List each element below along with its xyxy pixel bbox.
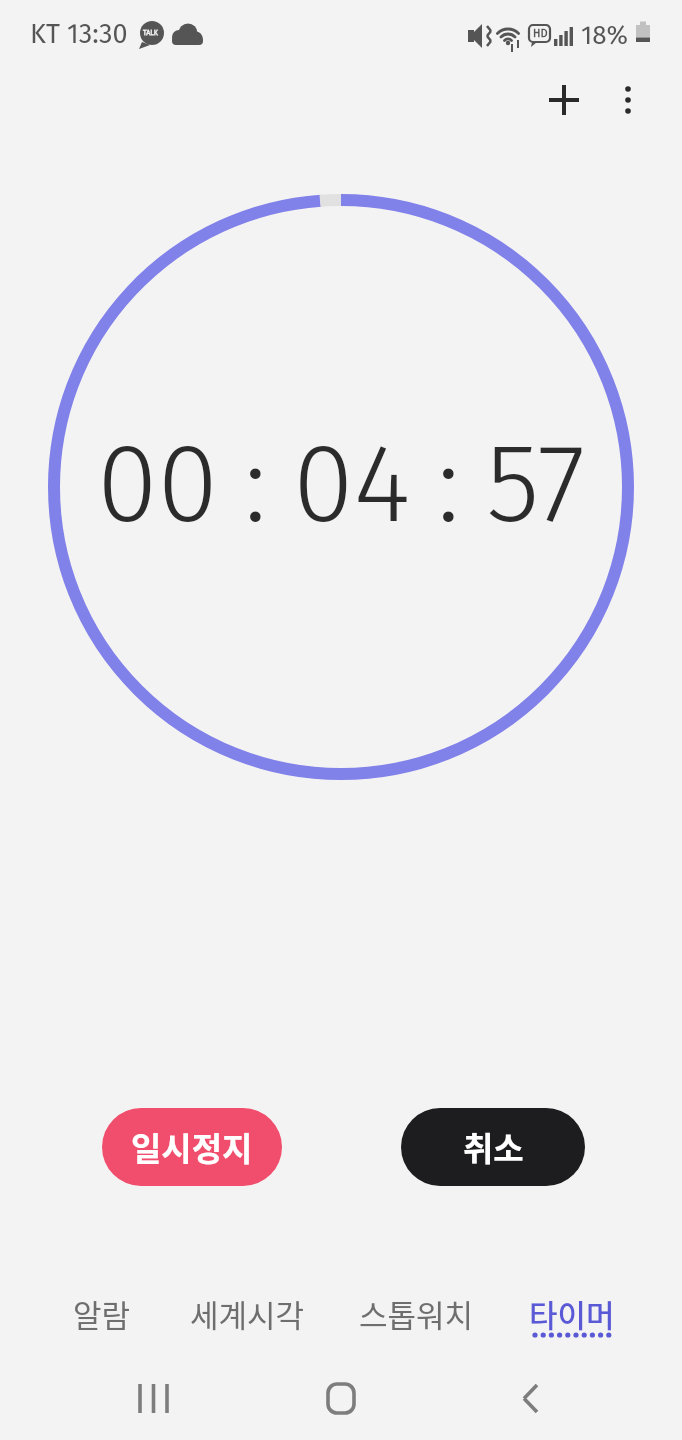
staticText: 타이머 xyxy=(529,1291,615,1336)
button[interactable] xyxy=(491,1360,571,1435)
button[interactable] xyxy=(539,75,589,125)
staticText: 알람 xyxy=(73,1291,131,1336)
button[interactable]: 스톱워치 xyxy=(341,1288,491,1338)
button[interactable]: 타이머 xyxy=(497,1288,647,1338)
staticText: 18% xyxy=(581,20,629,51)
staticText: HD xyxy=(533,27,548,40)
staticText: 00 xyxy=(97,418,218,550)
button[interactable]: 알람 xyxy=(27,1288,177,1338)
button[interactable]: 일시정지 xyxy=(102,1108,282,1186)
staticText: : xyxy=(437,418,460,550)
button[interactable] xyxy=(603,75,653,125)
button[interactable] xyxy=(301,1360,381,1435)
staticText: 57 xyxy=(486,418,586,550)
button[interactable]: 취소 xyxy=(401,1108,585,1186)
staticText: KT 13:30 xyxy=(30,18,128,50)
button[interactable]: 세계시각 xyxy=(172,1288,322,1338)
button[interactable] xyxy=(113,1360,193,1435)
staticText: 세계시각 xyxy=(190,1291,305,1336)
staticText: 스톱워치 xyxy=(359,1291,474,1336)
staticText: 취소 xyxy=(463,1123,524,1171)
staticText: TALK xyxy=(143,28,158,36)
staticText: : xyxy=(244,418,267,550)
staticText: 일시정지 xyxy=(131,1123,253,1171)
staticText: 04 xyxy=(293,418,411,550)
